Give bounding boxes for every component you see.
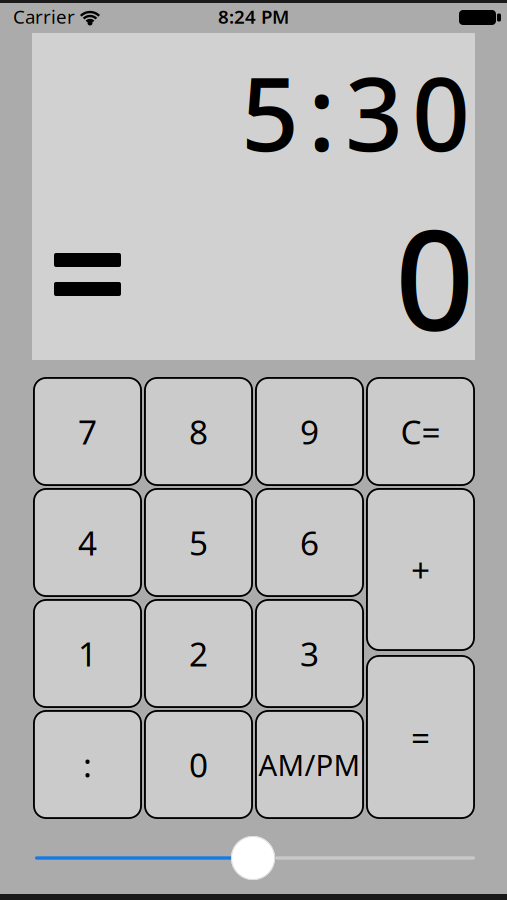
staticText: +: [411, 547, 430, 592]
button[interactable]: 0: [144, 710, 253, 819]
button[interactable]: 1: [33, 599, 142, 708]
staticText: :: [83, 742, 92, 787]
staticText: C=: [400, 409, 440, 454]
staticText: 2: [189, 631, 208, 676]
button[interactable]: :: [33, 710, 142, 819]
button[interactable]: 3: [255, 599, 364, 708]
button[interactable]: AM/PM: [255, 710, 364, 819]
staticText: Carrier: [13, 4, 75, 29]
button[interactable]: +: [366, 488, 475, 651]
button[interactable]: 5: [144, 488, 253, 597]
staticText: 5: [189, 520, 208, 565]
button[interactable]: Slider: [35, 836, 475, 880]
staticText: 5:30: [241, 45, 470, 179]
button[interactable]: 6: [255, 488, 364, 597]
button[interactable]: 4: [33, 488, 142, 597]
button[interactable]: =: [366, 655, 475, 819]
button[interactable]: 9: [255, 377, 364, 486]
button[interactable]: C=: [366, 377, 475, 486]
staticText: 4: [78, 520, 97, 565]
staticText: 8: [189, 409, 208, 454]
staticText: 6: [300, 520, 319, 565]
button[interactable]: 8: [144, 377, 253, 486]
staticText: 1: [78, 631, 97, 676]
button[interactable]: 2: [144, 599, 253, 708]
staticText: 7: [78, 409, 97, 454]
staticText: AM/PM: [258, 745, 360, 784]
staticText: 0: [395, 185, 474, 369]
button[interactable]: 7: [33, 377, 142, 486]
staticText: 8:24 PM: [218, 4, 289, 29]
staticText: 0: [189, 742, 208, 787]
staticText: =: [411, 715, 430, 759]
staticText: 3: [300, 631, 319, 676]
staticText: 9: [300, 409, 319, 454]
